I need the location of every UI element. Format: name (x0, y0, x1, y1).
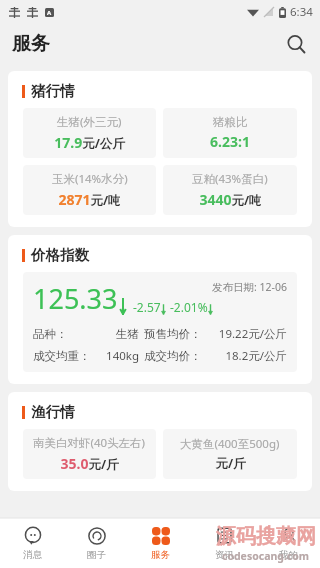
staticText: 我的 (279, 549, 298, 561)
button[interactable]: 豆粕(43%蛋白) (163, 165, 297, 215)
button[interactable]: 服务 (128, 518, 192, 568)
button[interactable]: 猪粮比 (163, 108, 297, 158)
button[interactable]: 发布日期: 12-06 (23, 272, 297, 372)
staticText: 大黄鱼(400至500g) (180, 436, 280, 452)
staticText: 南美白对虾(40头左右) (33, 435, 146, 451)
staticText: 发布日期: 12-06 (212, 280, 287, 294)
staticText: 消息 (23, 549, 42, 561)
staticText: 源码搜藏网 (216, 524, 316, 549)
staticText: 35.0元/斤 (60, 454, 119, 473)
staticText: 19.22元/公斤 (212, 326, 287, 342)
button[interactable]: 玉米(14%水分) (23, 165, 156, 215)
button[interactable]: 资讯 (192, 518, 256, 568)
staticText: 125.33 (33, 280, 118, 317)
button[interactable]: 圈子 (64, 518, 128, 568)
staticText: 6.23:1 (210, 132, 250, 151)
staticText: A (47, 9, 52, 17)
staticText: 玉米(14%水分) (52, 171, 128, 187)
staticText: 猪粮比 (213, 115, 248, 129)
staticText: 渔行情 (31, 403, 75, 421)
button[interactable]: 消息 (0, 518, 64, 568)
staticText: 成交均价： (144, 349, 212, 363)
staticText: 服务 (12, 32, 50, 56)
staticText: 服务 (151, 549, 170, 561)
staticText: 品种： (33, 327, 92, 341)
staticText: 2871元/吨 (58, 190, 121, 209)
button[interactable]: 生猪(外三元) (23, 108, 156, 158)
button[interactable]: 大黄鱼(400至500g) (163, 429, 297, 479)
staticText: codesocang.com (222, 549, 310, 563)
staticText: 预售均价： (144, 327, 212, 341)
staticText: 元/斤 (215, 455, 246, 472)
button[interactable]: Search (282, 30, 310, 58)
button[interactable]: 我的 (256, 518, 320, 568)
staticText: 成交均重： (33, 349, 92, 363)
staticText: 6:34 (290, 4, 313, 20)
staticText: -2.01% (170, 299, 208, 315)
staticText: 资讯 (215, 549, 234, 561)
staticText: 17.9元/公斤 (54, 133, 125, 152)
staticText: 生猪(外三元) (57, 114, 122, 130)
staticText: 圈子 (87, 549, 106, 561)
staticText: -2.57 (133, 299, 161, 315)
button[interactable]: 南美白对虾(40头左右) (23, 429, 156, 479)
staticText: 18.2元/公斤 (212, 348, 287, 364)
staticText: 生猪 (92, 327, 139, 341)
staticText: 豆粕(43%蛋白) (192, 171, 268, 187)
staticText: 140kg (92, 348, 139, 364)
staticText: 猪行情 (31, 82, 75, 100)
staticText: 价格指数 (31, 246, 89, 264)
staticText: 3440元/吨 (199, 190, 262, 209)
